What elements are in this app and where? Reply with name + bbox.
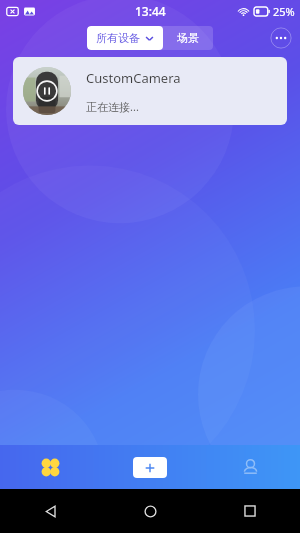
button[interactable]: Add device xyxy=(133,457,167,478)
button[interactable]: Back xyxy=(0,489,100,533)
staticText: 正在连接... xyxy=(86,99,139,114)
button[interactable]: CustomCamera xyxy=(13,57,287,125)
button[interactable]: 所有设备 xyxy=(87,26,163,50)
button[interactable]: 场景 xyxy=(163,26,213,50)
button[interactable]: Recent apps xyxy=(200,489,300,533)
staticText: 场景 xyxy=(177,31,199,45)
staticText: 13:44 xyxy=(135,3,166,19)
button[interactable]: Devices xyxy=(0,445,100,489)
staticText: 25% xyxy=(273,4,295,19)
staticText: CustomCamera xyxy=(86,69,181,87)
staticText: 所有设备 xyxy=(96,31,140,45)
button[interactable]: Home xyxy=(100,489,200,533)
button[interactable]: Profile xyxy=(200,445,300,489)
button[interactable]: More options xyxy=(270,27,292,49)
